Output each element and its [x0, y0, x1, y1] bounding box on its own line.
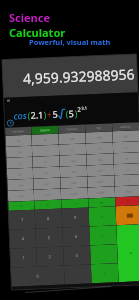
staticText: 1: [22, 255, 26, 261]
staticText: Science: [9, 10, 50, 25]
button[interactable]: cosh⁻¹: [87, 175, 115, 187]
button[interactable]: sin: [7, 168, 33, 180]
button[interactable]: sin⁻¹: [33, 167, 60, 179]
button[interactable]: 0: [11, 265, 65, 287]
staticText: C: [127, 199, 130, 204]
staticText: cosh: [70, 181, 78, 185]
button[interactable]: 9: [61, 207, 89, 227]
button[interactable]: Standard: [5, 127, 31, 136]
button[interactable]: log: [59, 154, 87, 167]
button[interactable]: tan: [8, 190, 34, 202]
button[interactable]: 6: [62, 226, 90, 246]
staticText: 5: [68, 107, 75, 119]
button[interactable]: e: [114, 163, 139, 175]
button[interactable]: MR: [58, 132, 86, 145]
staticText: tanh: [71, 192, 78, 196]
button[interactable]: 1: [10, 248, 37, 268]
button[interactable]: 4,959.932988956: [2, 54, 138, 98]
staticText: MR: [69, 137, 75, 141]
staticText: 3.1: [81, 105, 87, 111]
button[interactable]: Fractions: [58, 124, 85, 134]
staticText: log: [70, 159, 76, 163]
staticText: eˣ: [125, 157, 129, 161]
button[interactable]: ÷: [89, 225, 117, 245]
staticText: sinh: [71, 170, 77, 174]
button[interactable]: tanh: [61, 187, 88, 199]
staticText: %: [100, 200, 103, 205]
staticText: 6: [75, 234, 78, 240]
staticText: ): [74, 107, 78, 119]
button[interactable]: 1/x: [6, 146, 32, 158]
button[interactable]: ×: [88, 206, 116, 226]
button[interactable]: Backspace: [115, 205, 139, 225]
button[interactable]: tan⁻¹: [34, 189, 61, 201]
staticText: x!: [18, 161, 22, 165]
button[interactable]: 7: [9, 210, 35, 230]
button[interactable]: ): [61, 198, 88, 208]
staticText: 4,959.932988956: [23, 64, 135, 88]
button[interactable]: 8: [34, 209, 62, 229]
staticText: +/-: [19, 203, 24, 208]
staticText: 5: [52, 108, 59, 120]
button[interactable]: sinh: [60, 165, 87, 178]
staticText: deg: [126, 190, 132, 194]
button[interactable]: π: [114, 174, 139, 186]
button[interactable]: eˣ: [113, 152, 139, 164]
button[interactable]: sinh⁻¹: [87, 164, 114, 176]
button[interactable]: cosh: [60, 176, 88, 189]
staticText: Powerful, visual math: [29, 37, 111, 47]
button[interactable]: %: [88, 197, 115, 207]
button[interactable]: C: [115, 196, 139, 206]
button[interactable]: +/-: [8, 201, 35, 211]
button[interactable]: deg: [115, 185, 139, 197]
staticText: Calculator: [9, 25, 66, 40]
staticText: tan⁻¹: [44, 193, 51, 197]
button[interactable]: Tips: [85, 123, 112, 132]
button[interactable]: M-: [31, 134, 59, 146]
staticText: 1/x: [17, 150, 22, 154]
button[interactable]: 4: [9, 229, 36, 249]
button[interactable]: 2: [36, 246, 64, 267]
staticText: −: [102, 252, 106, 257]
button[interactable]: /: [32, 145, 59, 157]
staticText: cos: [13, 109, 28, 121]
button[interactable]: =: [116, 224, 139, 282]
other: History: [7, 119, 14, 127]
button[interactable]: xʸ: [86, 142, 113, 154]
staticText: eˣ: [125, 146, 128, 150]
button[interactable]: 5: [35, 227, 63, 248]
staticText: π: [127, 179, 129, 183]
staticText: cos⁻¹: [43, 182, 51, 186]
button[interactable]: log₂: [86, 153, 114, 165]
button[interactable]: cos: [7, 179, 34, 191]
button[interactable]: eˣ: [113, 141, 139, 153]
staticText: M-: [44, 138, 48, 142]
button[interactable]: cos⁻¹: [33, 178, 61, 190]
button[interactable]: ln: [32, 156, 60, 168]
button[interactable]: x!: [6, 157, 33, 169]
button[interactable]: 3: [63, 245, 91, 265]
staticText: Standard: [12, 129, 24, 133]
button[interactable]: MS: [85, 131, 113, 143]
staticText: MC: [123, 135, 129, 139]
staticText: 8: [47, 216, 50, 222]
button[interactable]: .: [64, 264, 92, 284]
button[interactable]: x²: [59, 143, 86, 156]
staticText: sinh⁻¹: [97, 169, 105, 173]
button[interactable]: +: [91, 263, 119, 283]
staticText: sin: [18, 172, 22, 176]
staticText: =: [129, 250, 133, 257]
button[interactable]: (: [34, 200, 62, 210]
button[interactable]: tanh⁻¹: [88, 186, 115, 198]
button[interactable]: History: [4, 92, 139, 128]
staticText: 9: [74, 215, 77, 221]
button[interactable]: −: [90, 244, 118, 264]
staticText: ÷: [102, 233, 105, 238]
button[interactable]: M+: [5, 135, 32, 147]
button[interactable]: MC: [112, 130, 139, 142]
staticText: sin⁻¹: [44, 171, 50, 175]
button[interactable]: Settings: [112, 122, 139, 131]
staticText: +: [103, 271, 106, 276]
staticText: 4: [22, 236, 25, 242]
button[interactable]: Science: [31, 126, 58, 135]
